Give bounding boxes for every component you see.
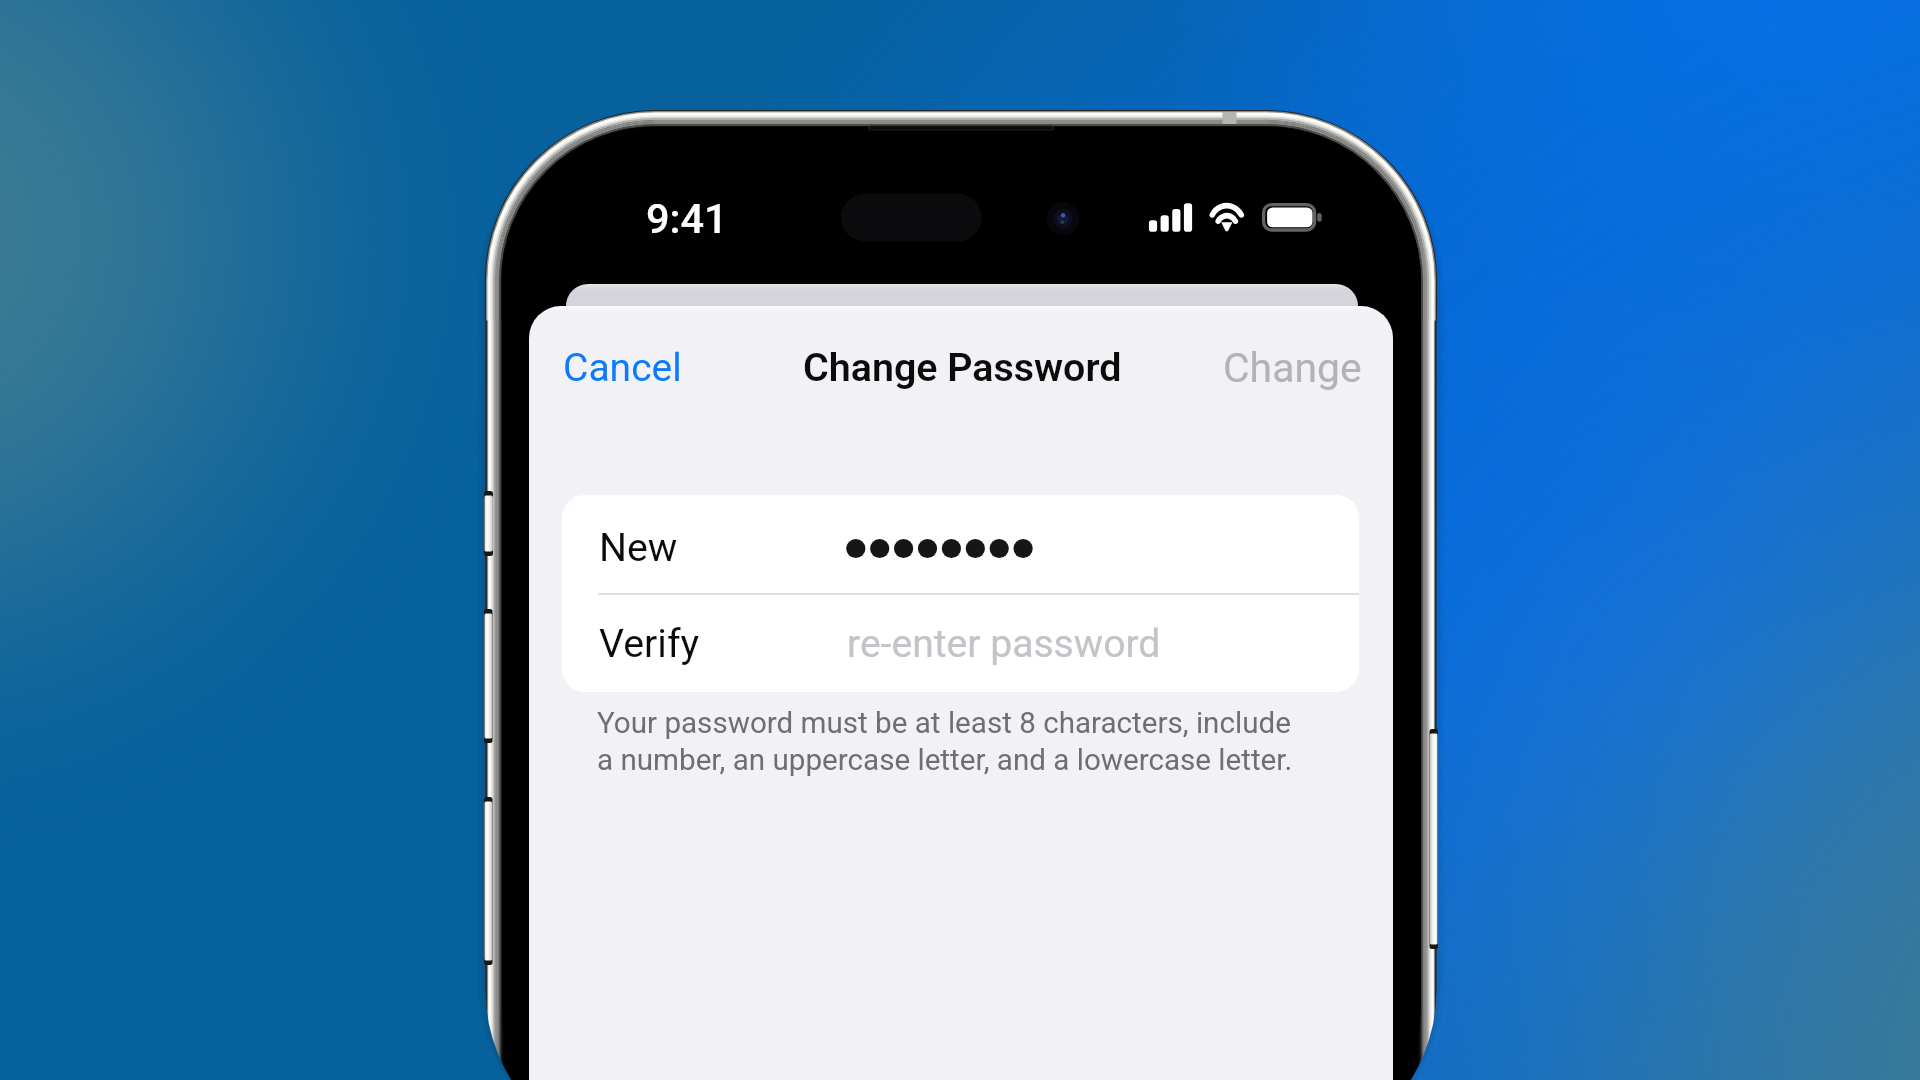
staticText: Your password must be at least 8 charact… xyxy=(597,706,1313,777)
staticText: Verify xyxy=(599,621,700,667)
button[interactable]: New xyxy=(562,495,1359,593)
staticText: 9:41 xyxy=(646,194,728,243)
staticText: Cancel xyxy=(563,345,682,391)
staticText: Change xyxy=(1223,344,1362,392)
staticText: New xyxy=(599,525,678,571)
button[interactable]: Change xyxy=(1206,332,1379,404)
button[interactable]: Cancel xyxy=(546,333,699,403)
button[interactable]: Verify xyxy=(562,595,1359,691)
staticText: Change Password xyxy=(803,344,1122,390)
staticText: re-enter password xyxy=(847,621,1161,667)
